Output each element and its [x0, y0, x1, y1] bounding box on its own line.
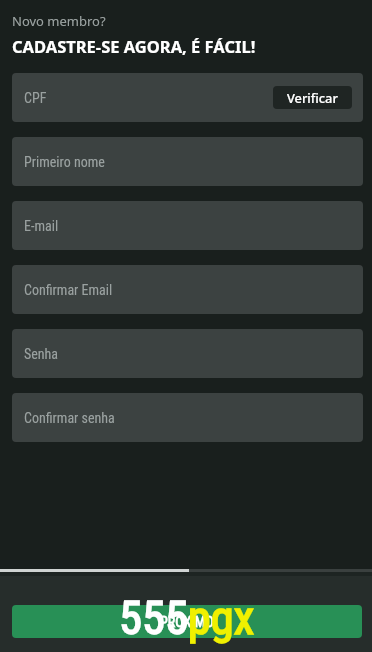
- staticText: CADASTRE-SE AGORA, É FÁCIL!: [12, 35, 256, 57]
- staticText: Verificar: [287, 89, 338, 106]
- button[interactable]: E-mail: [12, 201, 363, 250]
- staticText: PRÓXIMO: [160, 614, 214, 630]
- staticText: Confirmar senha: [24, 410, 115, 426]
- staticText: Primeiro nome: [24, 154, 105, 170]
- staticText: Confirmar Email: [24, 282, 113, 298]
- staticText: Novo membro?: [12, 12, 106, 30]
- staticText: Senha: [24, 346, 59, 362]
- button[interactable]: Confirmar senha: [12, 393, 363, 442]
- staticText: E-mail: [24, 218, 59, 234]
- button[interactable]: Senha: [12, 329, 363, 378]
- staticText: CPF: [24, 90, 47, 106]
- button[interactable]: Verificar: [273, 86, 352, 109]
- button[interactable]: Confirmar Email: [12, 265, 363, 314]
- button[interactable]: CPF: [12, 73, 363, 122]
- button[interactable]: Primeiro nome: [12, 137, 363, 186]
- button[interactable]: PRÓXIMO: [12, 605, 362, 638]
- staticText: 555pgx: [119, 591, 255, 645]
